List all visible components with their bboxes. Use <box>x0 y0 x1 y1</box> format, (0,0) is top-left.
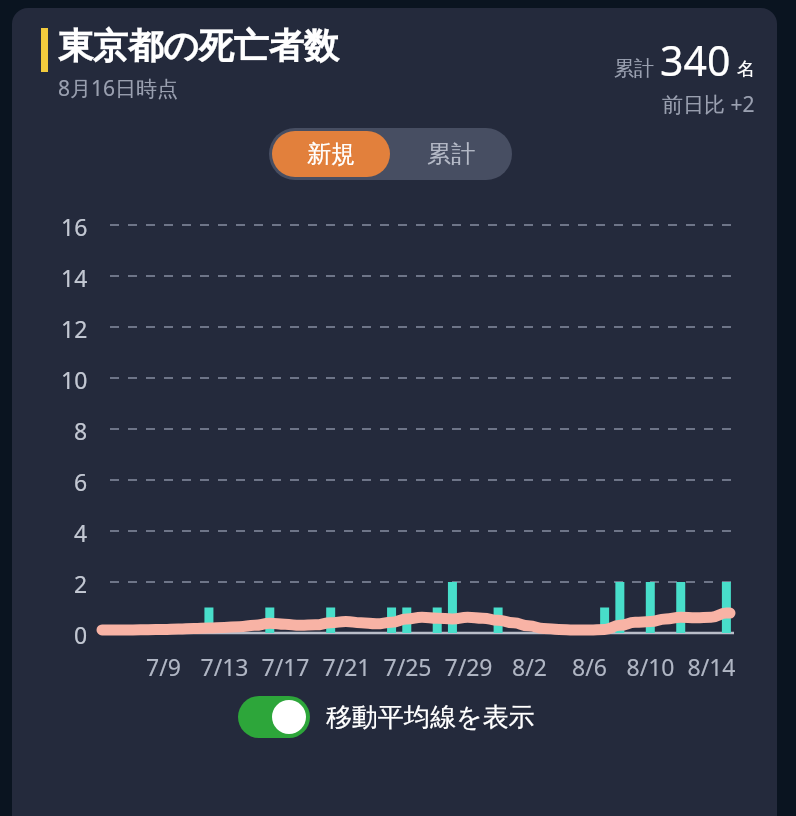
button[interactable]: 移動平均線を表示 切り替え <box>232 690 541 744</box>
staticText: 8月16日時点 <box>58 74 179 103</box>
staticText: 8 <box>74 415 88 446</box>
staticText: 7/9 <box>146 651 181 682</box>
staticText: 名 <box>737 58 755 81</box>
staticText: 移動平均線を表示 <box>326 701 535 734</box>
staticText: 8/14 <box>687 651 736 682</box>
other: 移動平均線を表示 切り替え <box>238 696 310 738</box>
staticText: 14 <box>61 262 88 293</box>
staticText: 7/25 <box>383 651 432 682</box>
staticText: 8/6 <box>572 651 607 682</box>
staticText: 16 <box>61 211 88 242</box>
staticText: 7/29 <box>444 651 493 682</box>
staticText: 7/17 <box>261 651 310 682</box>
button[interactable]: 累計 <box>393 131 509 177</box>
staticText: 7/21 <box>322 651 371 682</box>
button[interactable]: 新規 <box>272 131 390 177</box>
staticText: 340 <box>660 32 731 88</box>
staticText: 2 <box>74 568 88 599</box>
staticText: 8/2 <box>512 651 547 682</box>
staticText: 4 <box>74 517 88 548</box>
staticText: 東京都の死亡者数 <box>58 24 339 68</box>
staticText: 累計 <box>614 56 654 81</box>
staticText: 新規 <box>307 139 355 169</box>
staticText: 7/13 <box>200 651 249 682</box>
staticText: 10 <box>61 364 88 395</box>
staticText: 0 <box>74 619 88 650</box>
staticText: 前日比 +2 <box>662 90 755 118</box>
staticText: 8/10 <box>626 651 675 682</box>
staticText: 累計 <box>427 139 475 169</box>
staticText: 12 <box>61 313 88 344</box>
staticText: 6 <box>74 466 88 497</box>
